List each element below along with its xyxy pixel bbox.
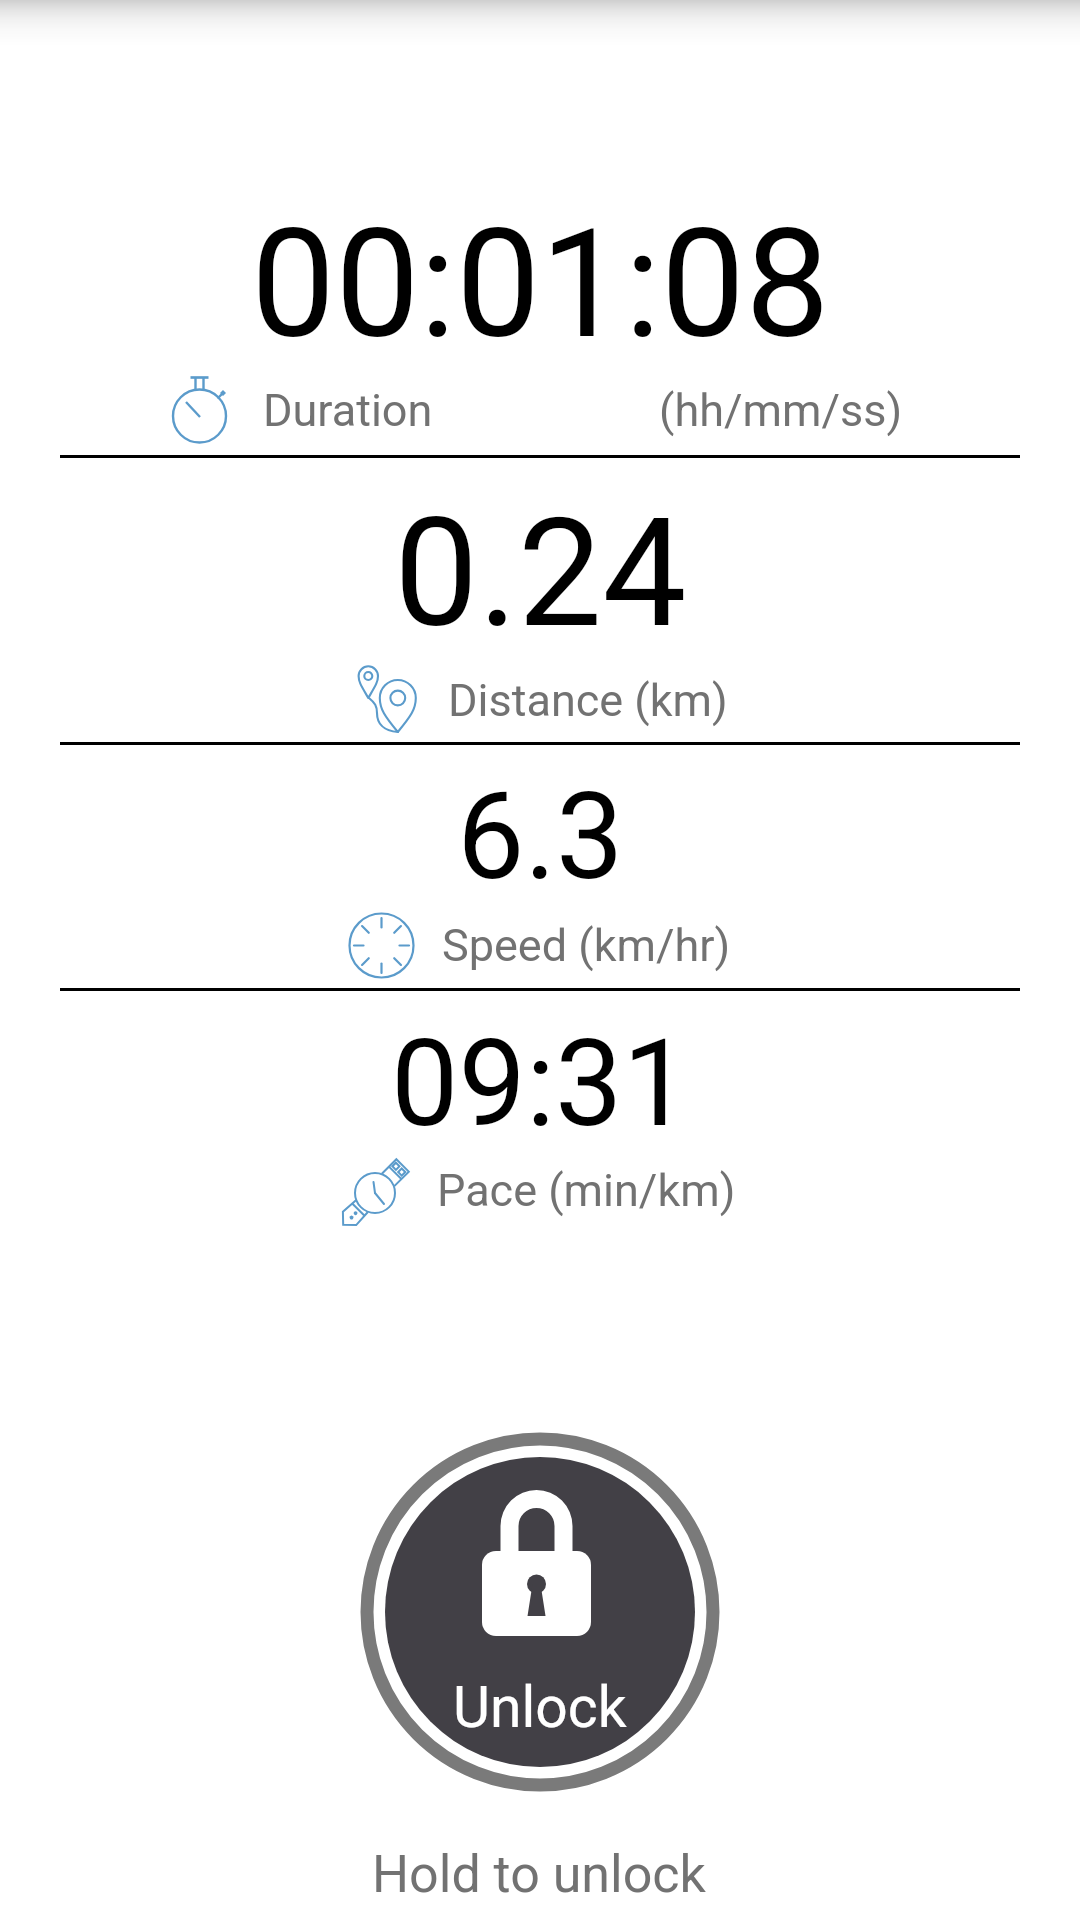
staticText: Hold to unlock xyxy=(372,1844,706,1905)
staticText: 0.24 xyxy=(394,486,687,662)
staticText: 09:31 xyxy=(391,1014,690,1155)
staticText: 6.3 xyxy=(457,767,624,908)
staticText: 00:01:08 xyxy=(251,197,830,373)
staticText: (hh/mm/ss) xyxy=(659,384,903,437)
staticText: Pace (min/km) xyxy=(437,1164,736,1217)
button[interactable]: Hold to unlock xyxy=(357,1429,723,1795)
staticText: Unlock xyxy=(453,1674,627,1741)
staticText: Distance (km) xyxy=(448,674,728,727)
staticText: Duration xyxy=(263,384,433,437)
staticText: Speed (km/hr) xyxy=(442,919,731,972)
